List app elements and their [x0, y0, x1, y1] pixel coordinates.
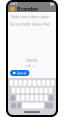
staticText: Send — [16, 70, 26, 76]
button[interactable]: Send — [10, 70, 29, 76]
staticText: Table view information — [10, 14, 49, 19]
staticText: Standard ⌄ — [26, 57, 38, 68]
staticText: Brandon — [17, 5, 38, 13]
staticText: ▮▮ — [50, 1, 54, 6]
staticText: Second table below filler — [10, 21, 51, 27]
staticText: 9:41 — [10, 1, 17, 6]
